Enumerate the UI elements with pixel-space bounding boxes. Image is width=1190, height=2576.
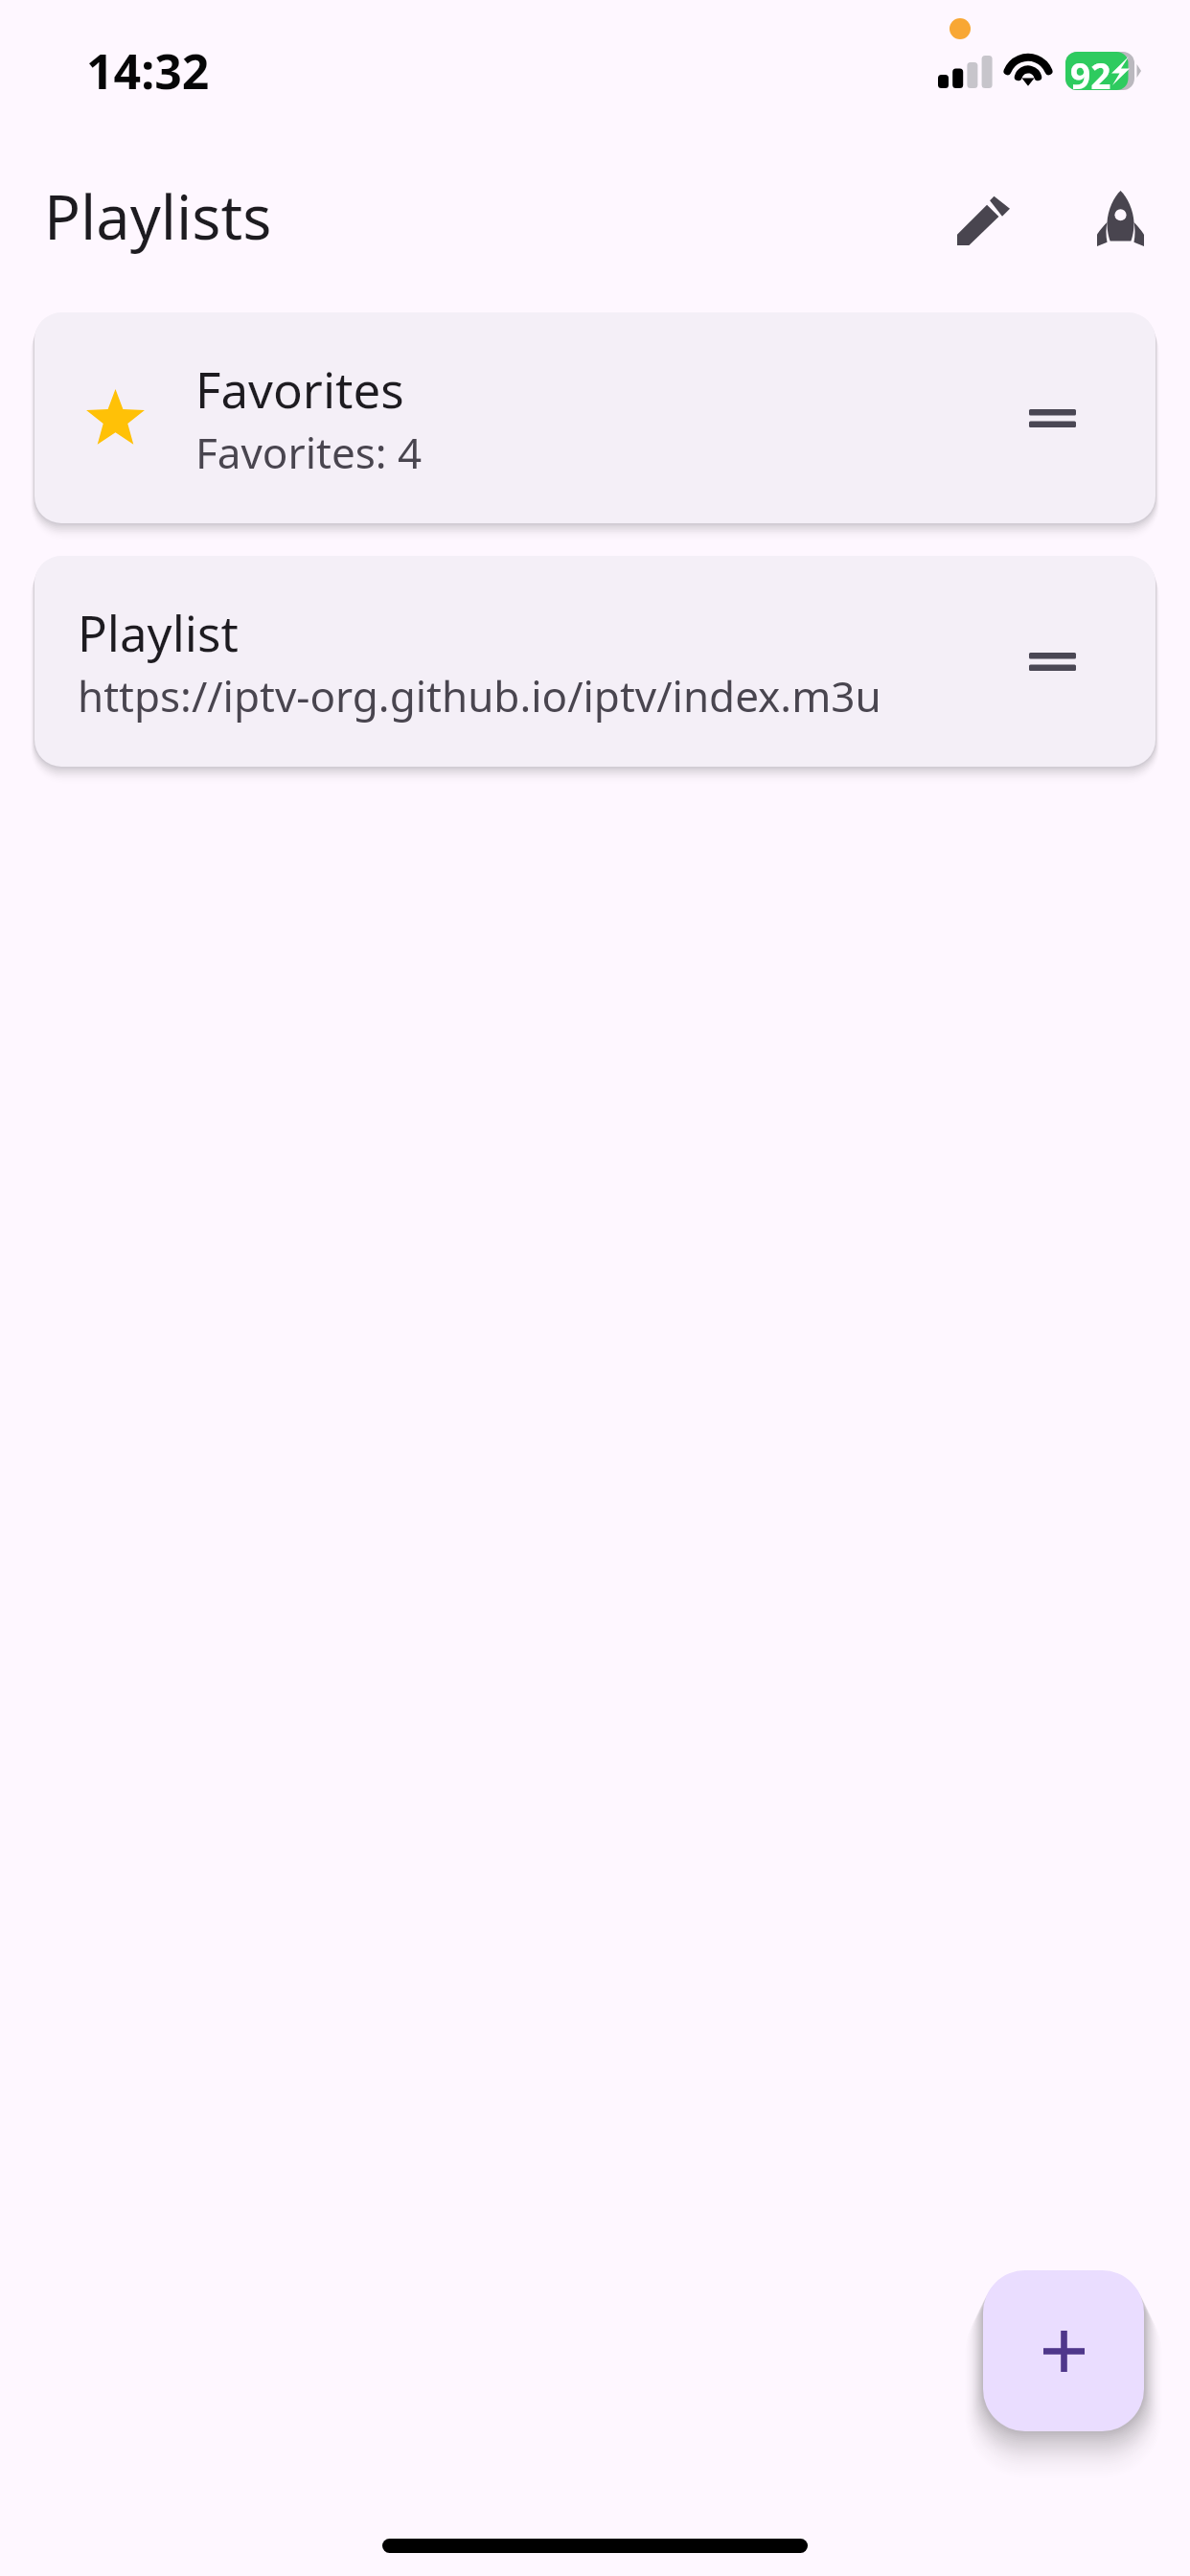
staticText: https://iptv-org.github.io/iptv/index.m3… — [78, 667, 881, 724]
button[interactable]: Reorder playlist — [983, 312, 1121, 523]
staticText: Favorites: 4 — [195, 424, 423, 481]
staticText: Favorites — [195, 356, 404, 422]
staticText: Playlist — [78, 599, 239, 665]
button[interactable]: Playlist — [34, 556, 1156, 767]
button[interactable]: Favorites — [34, 312, 1156, 523]
button[interactable]: Quick launch — [1063, 161, 1178, 276]
button[interactable]: Add playlist — [983, 2270, 1144, 2431]
staticText: Playlists — [44, 175, 272, 258]
button[interactable]: Reorder playlist — [983, 556, 1121, 767]
staticText: 92 — [1070, 51, 1111, 99]
staticText: 14:32 — [86, 38, 210, 103]
button[interactable]: Edit playlists — [926, 161, 1041, 276]
